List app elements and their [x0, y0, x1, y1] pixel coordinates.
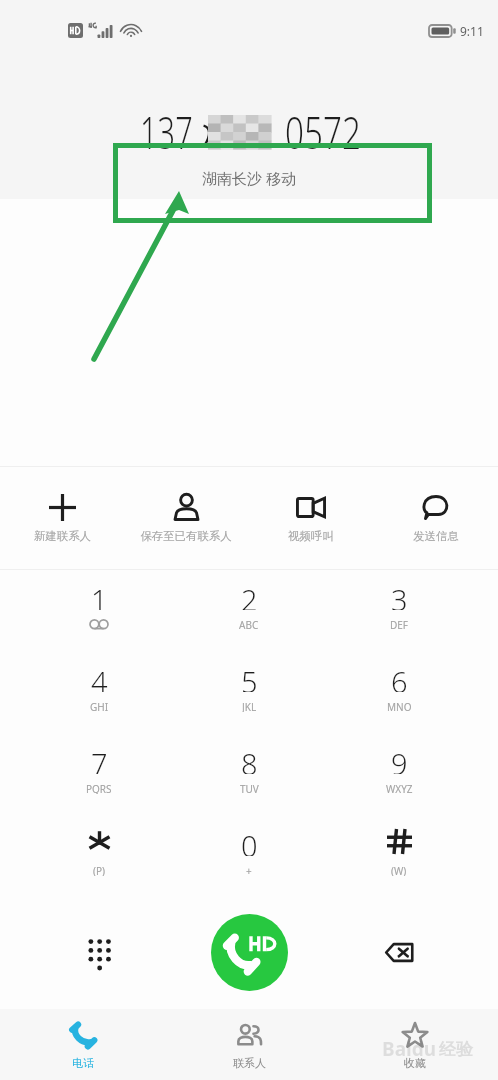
staticText: 3: [391, 580, 408, 610]
staticText: 保存至已有联系人: [140, 529, 232, 543]
staticText: PQRS: [86, 782, 112, 794]
button[interactable]: 6: [324, 646, 474, 728]
button[interactable]: 电话: [0, 1009, 166, 1080]
staticText: 4: [91, 662, 108, 692]
staticText: 7: [91, 744, 108, 774]
staticText: 1: [91, 580, 108, 610]
staticText: 收藏: [404, 1056, 426, 1070]
staticText: 联系人: [233, 1056, 266, 1070]
button[interactable]: 4: [24, 646, 174, 728]
staticText: (P): [93, 864, 106, 876]
staticText: ABC: [239, 618, 259, 630]
staticText: 0572: [285, 102, 361, 162]
button[interactable]: 保存至已有联系人: [124, 467, 248, 569]
button[interactable]: 联系人: [166, 1009, 332, 1080]
staticText: 湖南长沙 移动: [202, 168, 296, 188]
staticText: 9:11: [460, 23, 484, 39]
staticText: 9: [391, 744, 408, 774]
button[interactable]: 9: [324, 728, 474, 810]
staticText: GHI: [90, 700, 109, 712]
staticText: WXYZ: [386, 782, 413, 794]
button[interactable]: 8: [174, 728, 324, 810]
button[interactable]: (P): [24, 810, 174, 892]
button[interactable]: 发送信息: [373, 467, 498, 569]
staticText: 8: [241, 744, 258, 774]
staticText: 电话: [72, 1056, 94, 1070]
button[interactable]: 2: [174, 564, 324, 646]
button[interactable]: 收藏: [332, 1009, 498, 1080]
staticText: 137: [140, 102, 193, 162]
button[interactable]: Call: [211, 914, 288, 991]
staticText: (W): [391, 864, 407, 876]
button[interactable]: 视频呼叫: [248, 467, 373, 569]
staticText: DEF: [390, 618, 409, 630]
staticText: 0: [241, 826, 258, 856]
staticText: +: [246, 864, 252, 876]
staticText: 5: [241, 662, 258, 692]
staticText: 2: [241, 580, 258, 610]
staticText: 视频呼叫: [288, 529, 334, 543]
staticText: Baidu: [382, 1036, 437, 1062]
button[interactable]: 7: [24, 728, 174, 810]
button[interactable]: 5: [174, 646, 324, 728]
staticText: 新建联系人: [34, 529, 91, 543]
staticText: TUV: [240, 782, 259, 794]
staticText: 发送信息: [413, 529, 459, 543]
button[interactable]: Delete: [371, 924, 427, 980]
button[interactable]: 新建联系人: [0, 467, 124, 569]
staticText: JKL: [242, 700, 257, 712]
staticText: 经验: [439, 1039, 473, 1060]
button[interactable]: (W): [324, 810, 474, 892]
button[interactable]: Keypad: [71, 924, 127, 980]
button[interactable]: 0: [174, 810, 324, 892]
button[interactable]: 3: [324, 564, 474, 646]
button[interactable]: 1: [24, 564, 174, 646]
staticText: MNO: [387, 700, 412, 712]
staticText: 6: [391, 662, 408, 692]
